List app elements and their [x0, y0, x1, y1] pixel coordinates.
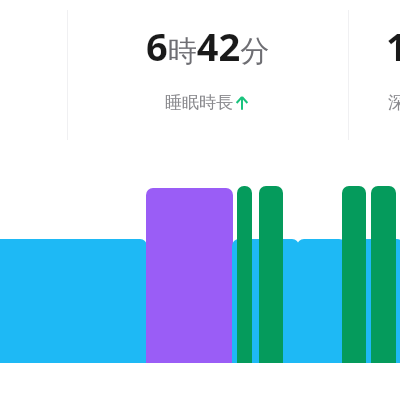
- staticText: 1: [386, 20, 400, 72]
- button[interactable]: 1: [349, 0, 400, 144]
- staticText: 6時42分: [146, 20, 270, 72]
- staticText: 深: [388, 92, 400, 113]
- other: Increase: [233, 93, 251, 113]
- button[interactable]: 6時42分: [68, 0, 348, 144]
- staticText: 睡眠時長: [165, 92, 233, 113]
- button[interactable]: Sleep stages chart: [0, 0, 400, 400]
